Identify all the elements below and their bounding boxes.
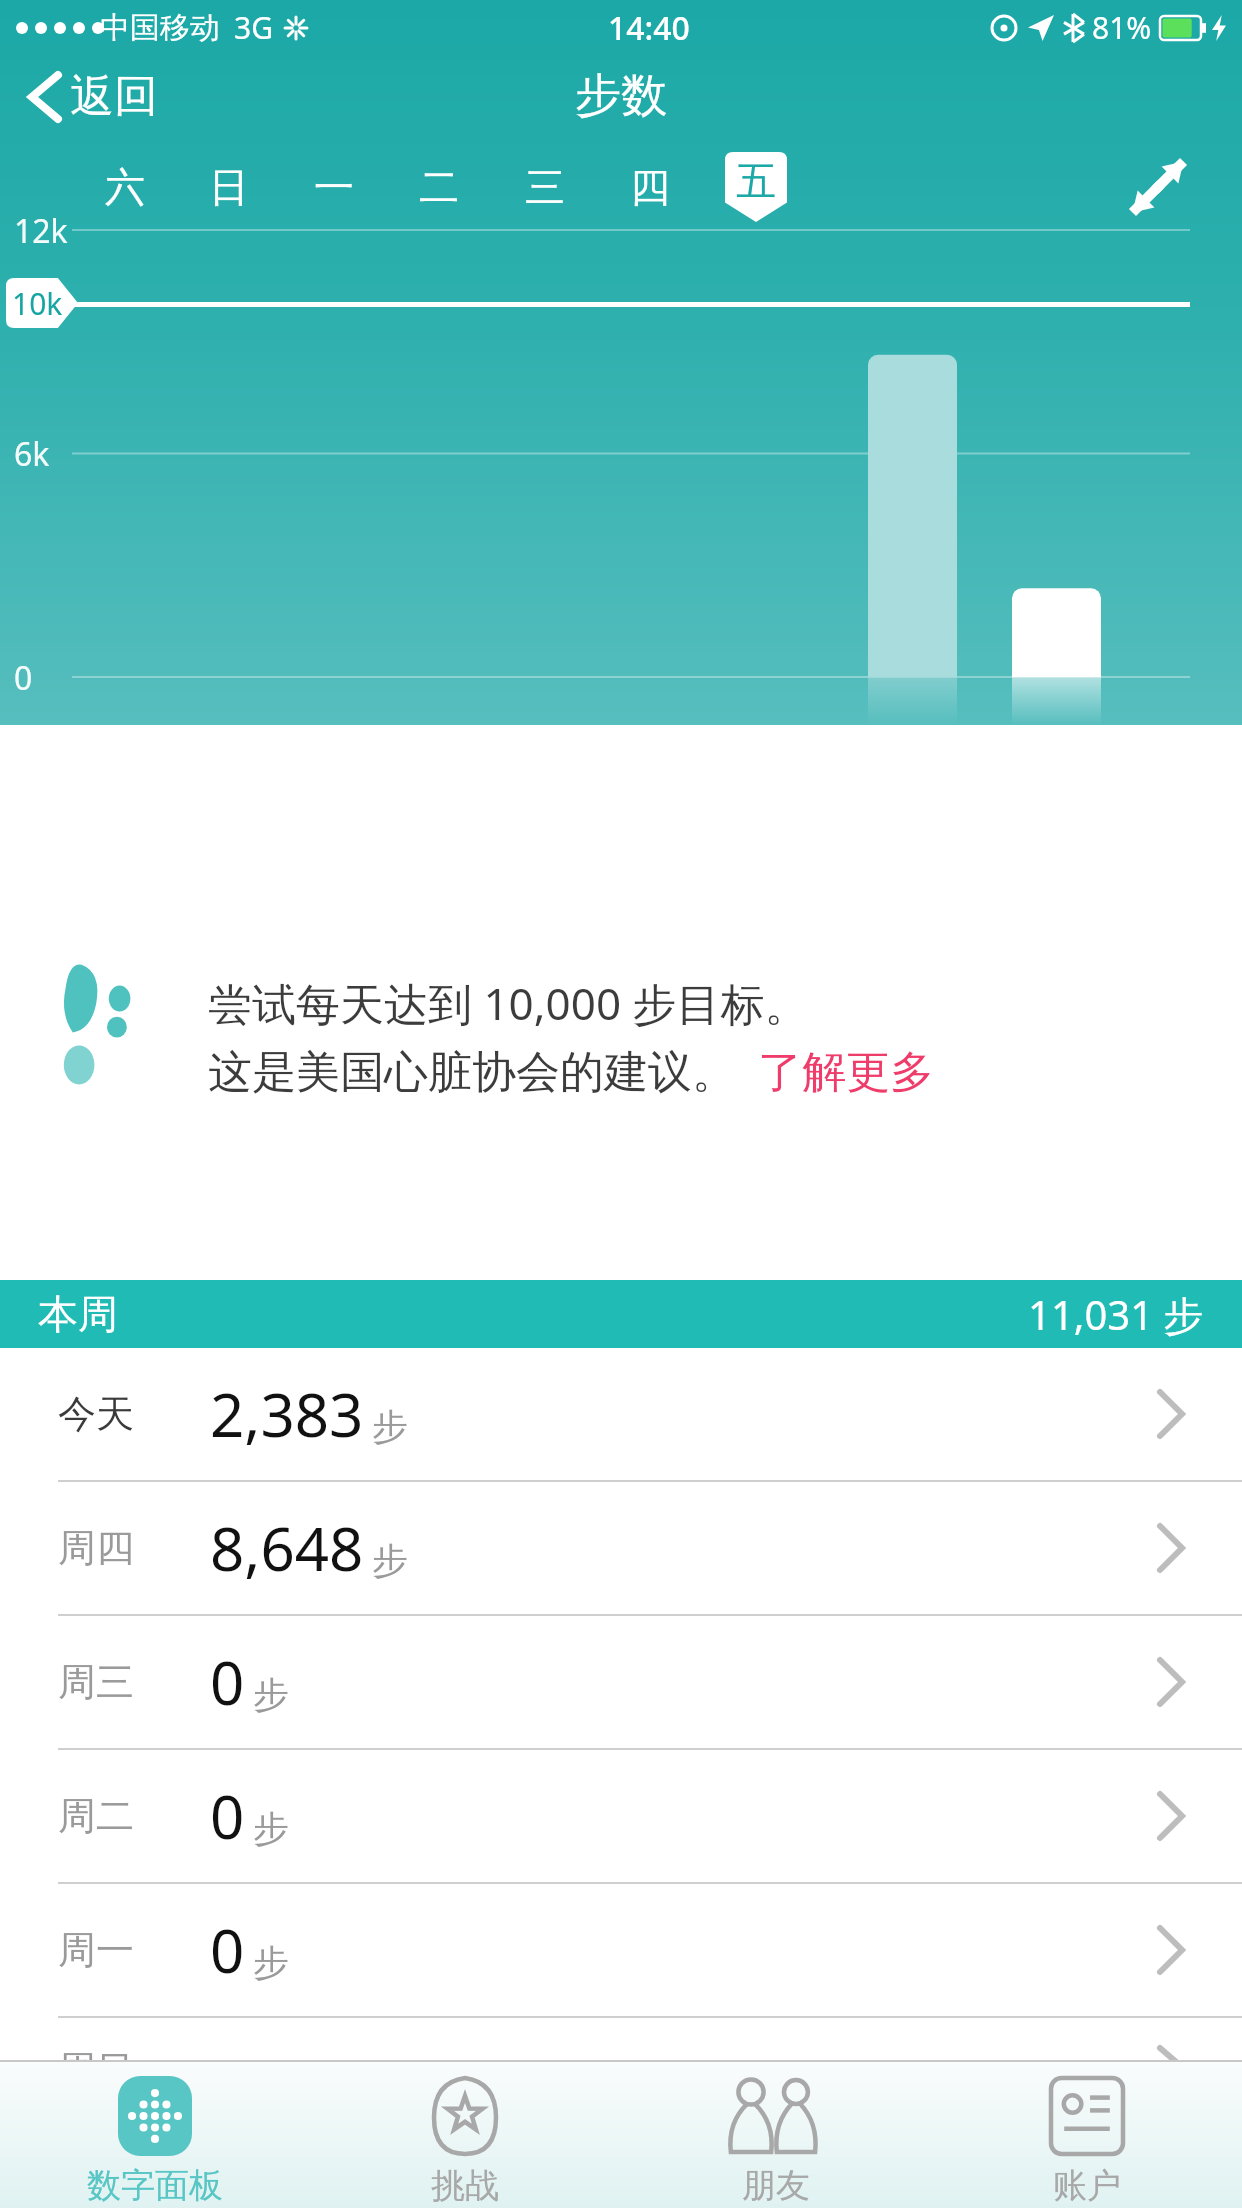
- staticText: 一: [314, 162, 354, 212]
- staticText: 数字面板: [87, 2164, 223, 2207]
- staticText: 中国移动: [100, 9, 220, 47]
- staticText: 三: [525, 162, 565, 212]
- staticText: 返回: [70, 69, 158, 124]
- staticText: 今天: [58, 1390, 134, 1438]
- staticText: 朋友: [742, 2164, 810, 2207]
- staticText: 步: [372, 1404, 408, 1449]
- staticText: 0: [210, 1641, 245, 1723]
- staticText: 步: [372, 1538, 408, 1583]
- button[interactable]: 六: [85, 152, 165, 222]
- staticText: 五: [736, 156, 776, 206]
- button[interactable]: 返回: [26, 63, 162, 130]
- staticText: 账户: [1053, 2164, 1121, 2207]
- button[interactable]: Expand chart: [1118, 152, 1198, 222]
- staticText: 11,031 步: [1028, 1287, 1204, 1342]
- button[interactable]: 了解更多: [758, 1045, 934, 1100]
- staticText: 周日: [58, 2046, 134, 2088]
- staticText: 步: [253, 1806, 289, 1851]
- staticText: 周一: [58, 1926, 134, 1974]
- staticText: 挑战: [431, 2164, 499, 2207]
- staticText: 3G: [234, 7, 273, 48]
- staticText: 0: [14, 656, 33, 700]
- button[interactable]: 周三: [0, 1616, 1242, 1748]
- button[interactable]: 日: [189, 152, 269, 222]
- staticText: 0: [210, 1909, 245, 1991]
- button[interactable]: 数字面板: [0, 2062, 310, 2208]
- button[interactable]: 周日: [0, 2018, 1242, 2060]
- staticText: 周二: [58, 1792, 134, 1840]
- staticText: 了解更多: [758, 1045, 934, 1100]
- staticText: 尝试每天达到 10,000 步目标。: [208, 973, 809, 1033]
- button[interactable]: 四: [610, 152, 690, 222]
- staticText: 日: [209, 162, 249, 212]
- staticText: 周三: [58, 1658, 134, 1706]
- button[interactable]: 周一: [0, 1884, 1242, 2016]
- staticText: 周四: [58, 1524, 134, 1572]
- button[interactable]: 朋友: [620, 2062, 931, 2208]
- staticText: 步数: [575, 67, 667, 125]
- staticText: 14:40: [608, 6, 690, 50]
- staticText: 10k: [12, 283, 63, 324]
- staticText: 12k: [14, 209, 68, 253]
- staticText: 0: [210, 2046, 245, 2088]
- staticText: 81%: [1092, 7, 1152, 48]
- staticText: 8,648: [210, 1507, 364, 1589]
- button[interactable]: 挑战: [310, 2062, 620, 2208]
- staticText: 2,383: [210, 1373, 364, 1455]
- button[interactable]: 三: [505, 152, 585, 222]
- staticText: 6k: [14, 432, 50, 476]
- staticText: 这是美国心脏协会的建议。: [208, 1045, 736, 1100]
- button[interactable]: 周四: [0, 1482, 1242, 1614]
- staticText: 六: [105, 162, 145, 212]
- staticText: 四: [630, 162, 670, 212]
- staticText: 本周: [38, 1289, 118, 1339]
- button[interactable]: 一: [294, 152, 374, 222]
- button[interactable]: 账户: [931, 2062, 1242, 2208]
- button[interactable]: 周二: [0, 1750, 1242, 1882]
- staticText: 二: [419, 162, 459, 212]
- staticText: 0: [210, 1775, 245, 1857]
- button[interactable]: 五: [716, 152, 796, 222]
- button[interactable]: 今天: [0, 1348, 1242, 1480]
- staticText: 步: [253, 1672, 289, 1717]
- staticText: 步: [253, 1940, 289, 1985]
- button[interactable]: 二: [399, 152, 479, 222]
